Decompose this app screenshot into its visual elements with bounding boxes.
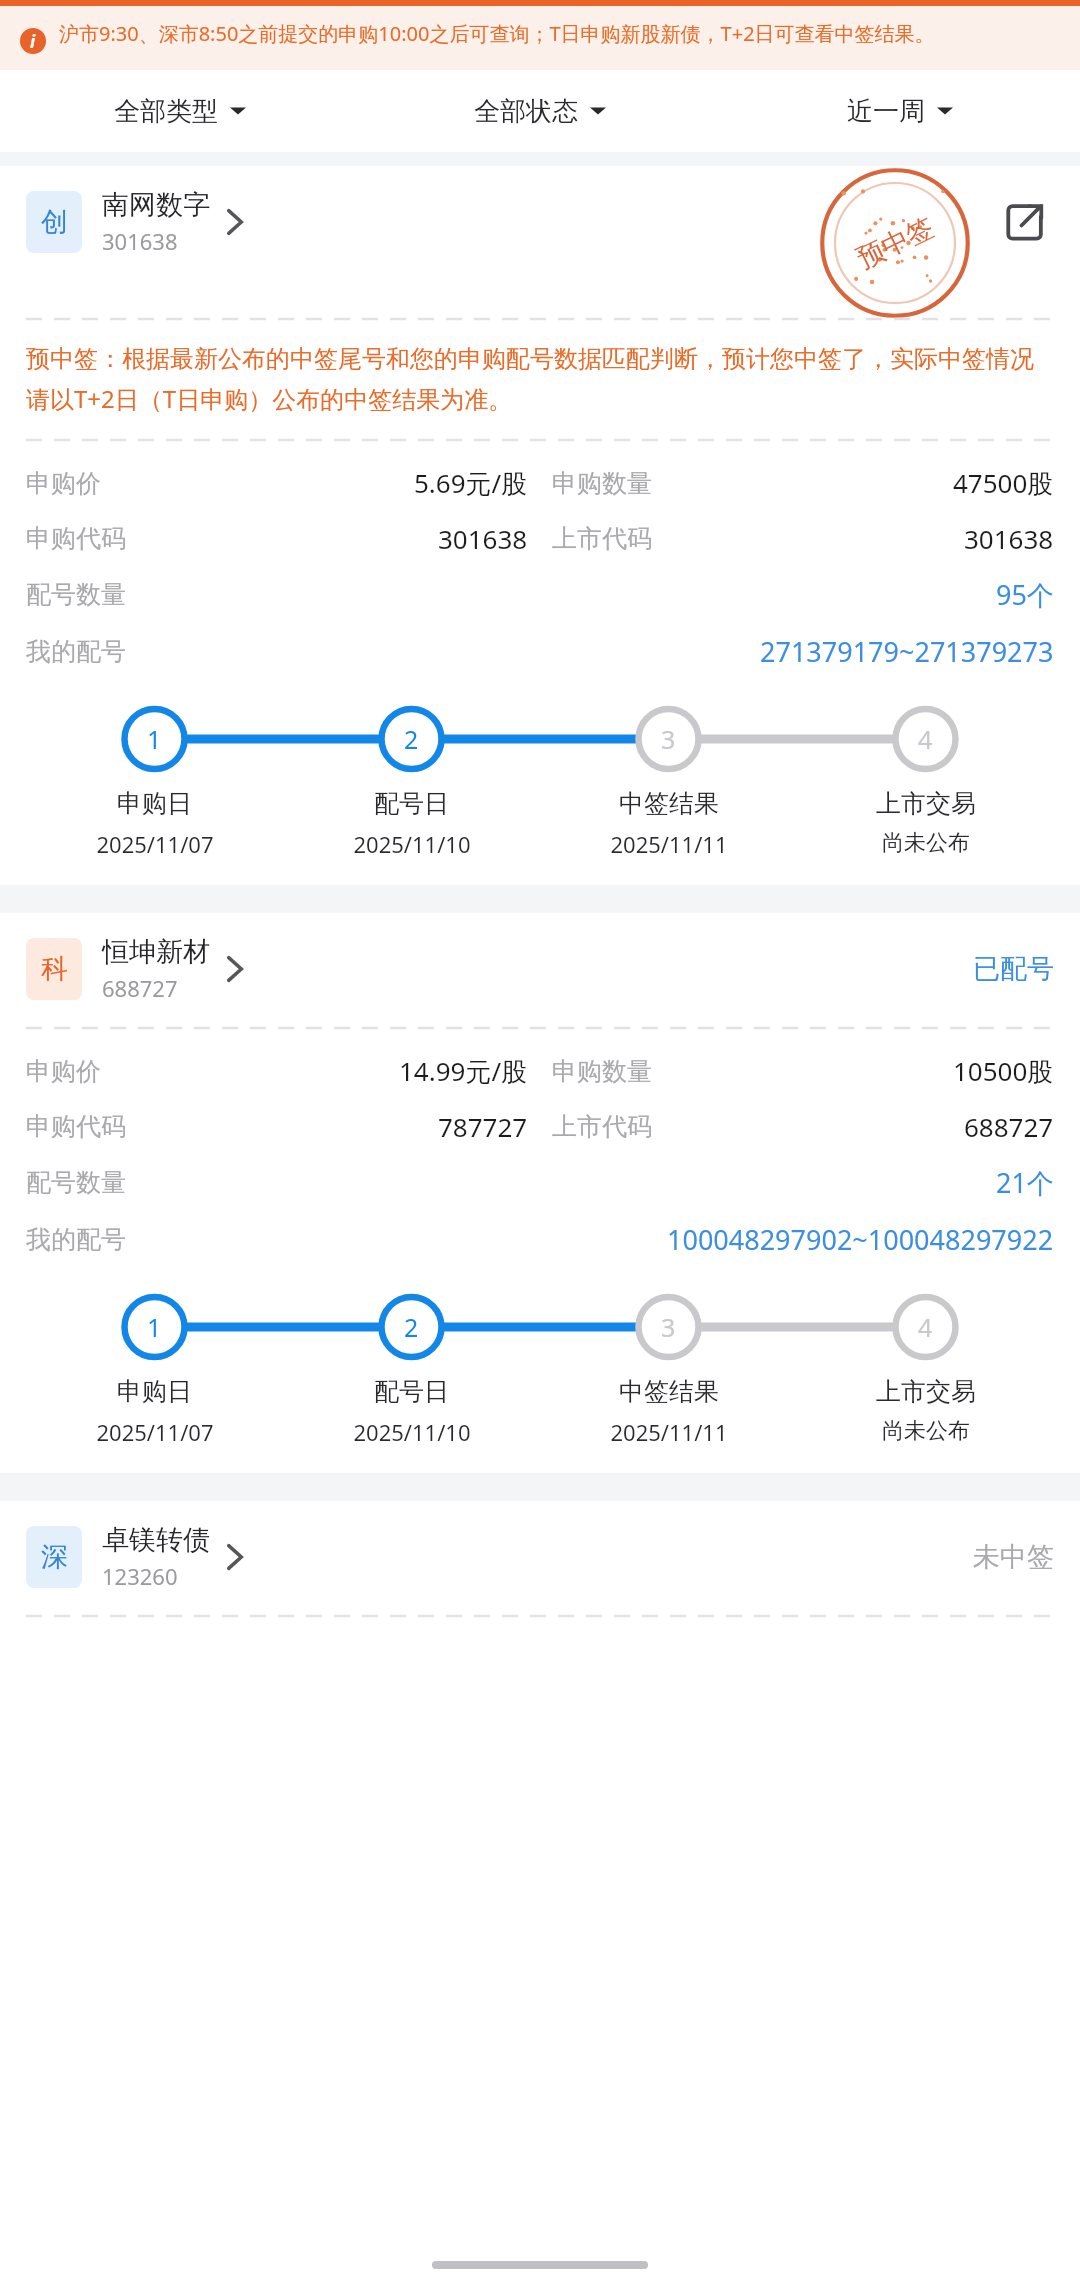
staticText: 3 [661,1310,676,1344]
staticText: 预中签：根据最新公布的中签尾号和您的申购配号数据匹配判断，预计您中签了，实际中签… [26,344,1054,415]
staticText: 申购日 [117,788,192,819]
staticText: 271379179~271379273 [760,633,1054,670]
staticText: 上市代码 [552,523,652,554]
staticText: 301638 [964,521,1054,556]
staticText: 2025/11/10 [353,829,471,859]
staticText: 配号数量 [26,579,126,610]
button[interactable]: 全部状态 [360,70,720,152]
staticText: 申购数量 [552,468,652,499]
button[interactable]: 创 [0,188,1080,256]
staticText: 配号日 [374,1376,449,1407]
button[interactable]: 全部类型 [0,70,360,152]
button[interactable]: 科 [0,935,1080,1003]
staticText: 科 [41,952,68,986]
staticText: 预中签 [852,210,939,276]
staticText: 4 [918,1310,933,1344]
staticText: 上市交易 [876,788,976,819]
staticText: 中签结果 [619,788,719,819]
staticText: 21个 [996,1164,1054,1201]
staticText: 2025/11/10 [353,1417,471,1447]
staticText: 1 [147,1310,162,1344]
staticText: 创 [41,205,68,239]
staticText: 5.69元/股 [414,465,528,501]
staticText: 我的配号 [26,1224,126,1255]
staticText: 688727 [964,1109,1054,1144]
staticText: 尚未公布 [882,1417,970,1445]
staticText: i [30,30,36,53]
staticText: 申购数量 [552,1056,652,1087]
button[interactable]: 分享 [996,193,1054,251]
staticText: 申购代码 [26,1111,126,1142]
staticText: 申购价 [26,468,101,499]
staticText: 上市代码 [552,1111,652,1142]
staticText: 尚未公布 [882,829,970,857]
staticText: 301638 [102,226,178,256]
staticText: 95个 [996,576,1054,613]
staticText: 2025/11/11 [610,829,728,859]
staticText: 47500股 [953,465,1054,501]
staticText: 申购代码 [26,523,126,554]
staticText: 2025/11/07 [96,1417,214,1447]
staticText: 未中签 [973,1540,1054,1574]
staticText: 已配号 [973,952,1054,986]
staticText: 我的配号 [26,636,126,667]
staticText: 全部类型 [114,95,218,128]
staticText: 123260 [102,1561,178,1591]
staticText: 1 [147,722,162,756]
staticText: 4 [918,722,933,756]
staticText: 恒坤新材 [102,935,210,969]
staticText: 配号数量 [26,1167,126,1198]
staticText: 申购价 [26,1056,101,1087]
staticText: 100048297902~100048297922 [667,1221,1054,1258]
staticText: 全部状态 [474,95,578,128]
staticText: 3 [661,722,676,756]
staticText: 上市交易 [876,1376,976,1407]
staticText: 近一周 [847,95,925,128]
staticText: 卓镁转债 [102,1523,210,1557]
staticText: 2 [404,1310,419,1344]
staticText: 中签结果 [619,1376,719,1407]
staticText: 301638 [438,521,528,556]
staticText: 10500股 [953,1053,1054,1089]
staticText: 沪市9:30、深市8:50之前提交的申购10:00之后可查询；T日申购新股新债，… [59,20,935,47]
staticText: 南网数字 [102,188,210,222]
staticText: 2025/11/07 [96,829,214,859]
staticText: 配号日 [374,788,449,819]
button[interactable]: 近一周 [720,70,1080,152]
staticText: 2 [404,722,419,756]
staticText: 14.99元/股 [399,1053,528,1089]
staticText: 2025/11/11 [610,1417,728,1447]
staticText: 申购日 [117,1376,192,1407]
staticText: 787727 [438,1109,528,1144]
staticText: 688727 [102,973,178,1003]
button[interactable]: 深 [0,1523,1080,1591]
staticText: 深 [41,1540,68,1574]
